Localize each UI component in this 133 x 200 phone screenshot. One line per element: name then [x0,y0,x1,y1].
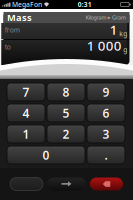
button[interactable]: 4 [7,104,45,122]
button[interactable]: 3 [87,125,125,143]
staticText: 4 [22,105,29,121]
button[interactable]: . [87,146,125,164]
button[interactable]: 9 [87,83,125,101]
staticText: 0:31 [78,0,92,9]
staticText: 6 [102,105,109,121]
staticText: g [123,45,127,54]
staticText: 2 [62,126,69,142]
staticText: . [104,147,107,163]
button[interactable]: Delete [90,177,123,190]
staticText: kg [119,29,127,38]
staticText: Mass [7,11,32,24]
staticText: 3 [102,126,109,142]
staticText: to [5,42,11,51]
staticText: 7 [22,84,29,100]
button[interactable]: Swap units [47,177,86,190]
button[interactable]: 6 [87,104,125,122]
button[interactable]: 7 [7,83,45,101]
button[interactable]: Units [10,177,43,190]
button[interactable]: Kilogram [86,14,126,21]
staticText: MegaFon [12,0,42,9]
staticText: 1 [110,21,118,38]
staticText: 0 [42,147,49,163]
staticText: 9 [102,84,109,100]
staticText: Gram [112,14,126,21]
button[interactable]: 2 [47,125,85,143]
staticText: ▸ [108,14,111,21]
button[interactable]: 8 [47,83,85,101]
button[interactable]: 0 [7,146,85,164]
staticText: 1 [22,126,29,142]
staticText: Kilogram [86,14,107,21]
staticText: from [5,25,20,34]
staticText: 8 [62,84,69,100]
staticText: 5 [62,105,69,121]
button[interactable]: 5 [47,104,85,122]
staticText: 1 000 [87,37,122,54]
button[interactable]: 1 [7,125,45,143]
